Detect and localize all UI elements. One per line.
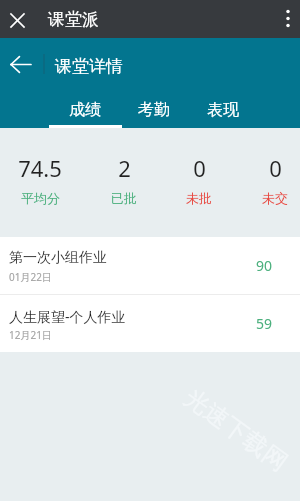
staticText: 已批 bbox=[111, 190, 137, 206]
button[interactable]: 人生展望-个人作业 bbox=[0, 295, 300, 352]
staticText: 课堂详情 bbox=[55, 56, 123, 77]
button[interactable]: More options bbox=[277, 0, 299, 38]
button[interactable]: Back bbox=[6, 50, 34, 78]
button[interactable]: 第一次小组作业 bbox=[0, 237, 300, 294]
staticText: 课堂派 bbox=[48, 9, 99, 30]
staticText: 74.5 bbox=[18, 153, 62, 183]
staticText: 0 bbox=[269, 153, 282, 183]
staticText: 表现 bbox=[207, 100, 239, 120]
staticText: 人生展望-个人作业 bbox=[9, 307, 126, 326]
staticText: 90 bbox=[256, 256, 273, 275]
staticText: 未交 bbox=[262, 190, 288, 206]
staticText: 未批 bbox=[186, 190, 212, 206]
staticText: 第一次小组作业 bbox=[9, 249, 107, 267]
staticText: 01月22日 bbox=[9, 270, 52, 284]
button[interactable]: 成绩 bbox=[50, 88, 119, 128]
staticText: 59 bbox=[256, 314, 273, 333]
staticText: 12月21日 bbox=[9, 328, 52, 342]
button[interactable]: 考勤 bbox=[119, 88, 188, 128]
staticText: 成绩 bbox=[69, 100, 101, 120]
staticText: 考勤 bbox=[138, 100, 170, 120]
button[interactable]: 表现 bbox=[188, 88, 257, 128]
staticText: 2 bbox=[118, 153, 131, 183]
button[interactable]: Close bbox=[4, 7, 30, 33]
staticText: 平均分 bbox=[21, 190, 60, 206]
staticText: 0 bbox=[193, 153, 206, 183]
